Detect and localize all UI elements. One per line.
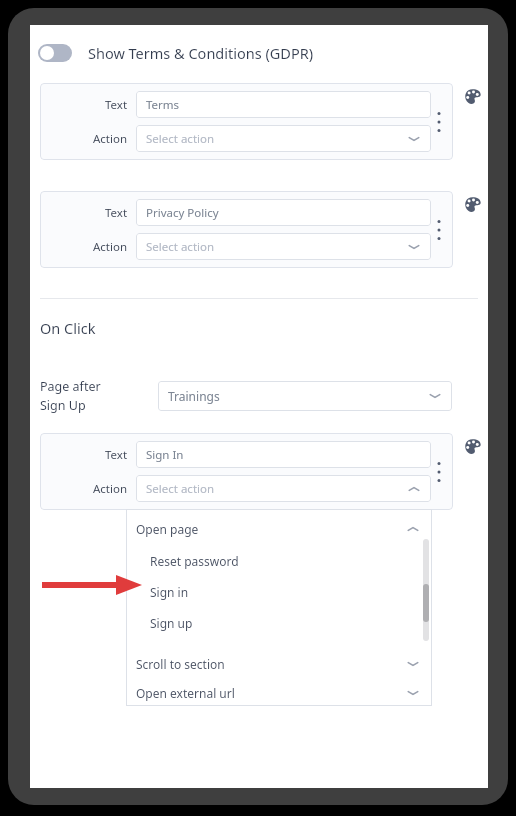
staticText: Trainings xyxy=(168,388,220,404)
staticText: Show Terms & Conditions (GDPR) xyxy=(88,43,314,63)
staticText: Text xyxy=(105,97,128,113)
staticText: On Click xyxy=(40,318,96,338)
button[interactable]: Scroll to section xyxy=(126,648,432,680)
staticText: Terms xyxy=(146,97,180,113)
staticText: Text xyxy=(105,447,128,463)
staticText: Select action xyxy=(146,481,215,497)
button[interactable]: Sign up xyxy=(126,607,432,638)
button[interactable]: More options xyxy=(432,105,446,139)
staticText: Select action xyxy=(146,131,215,147)
staticText: Sign In xyxy=(146,447,184,463)
button[interactable]: Reset password xyxy=(126,545,432,576)
button[interactable]: Style xyxy=(461,435,483,457)
button[interactable]: More options xyxy=(432,213,446,247)
staticText: Action xyxy=(93,481,128,497)
staticText: Sign Up xyxy=(40,397,86,414)
button[interactable]: Select action xyxy=(136,475,431,502)
staticText: Action xyxy=(93,239,128,255)
staticText: Reset password xyxy=(150,553,239,569)
button[interactable]: Open page xyxy=(126,513,432,545)
button[interactable]: Select action xyxy=(136,233,431,260)
button[interactable]: Style xyxy=(461,85,483,107)
staticText: Sign in xyxy=(150,584,189,600)
button[interactable] xyxy=(40,433,453,510)
staticText: Action xyxy=(93,131,128,147)
button[interactable]: Select action xyxy=(136,125,431,152)
button[interactable]: Privacy Policy xyxy=(136,199,431,226)
staticText: Scroll to section xyxy=(136,656,225,672)
staticText: Privacy Policy xyxy=(146,205,219,221)
button[interactable]: Style xyxy=(461,193,483,215)
button[interactable]: Sign In xyxy=(136,441,431,468)
staticText: Sign up xyxy=(150,615,193,631)
staticText: Page after xyxy=(40,378,101,395)
button[interactable] xyxy=(40,83,453,160)
button[interactable]: Open external url xyxy=(126,680,432,706)
staticText: Open page xyxy=(136,521,199,537)
button[interactable]: Terms xyxy=(136,91,431,118)
button[interactable]: More options xyxy=(432,455,446,489)
staticText: Text xyxy=(105,205,128,221)
button[interactable]: Show Terms & Conditions toggle xyxy=(38,44,72,62)
staticText: Open external url xyxy=(136,685,235,701)
button[interactable]: Sign in xyxy=(126,576,432,607)
button[interactable]: Show Terms & Conditions toggle xyxy=(38,43,314,63)
button[interactable]: Trainings xyxy=(158,381,452,411)
staticText: Select action xyxy=(146,239,215,255)
button[interactable] xyxy=(40,191,453,268)
